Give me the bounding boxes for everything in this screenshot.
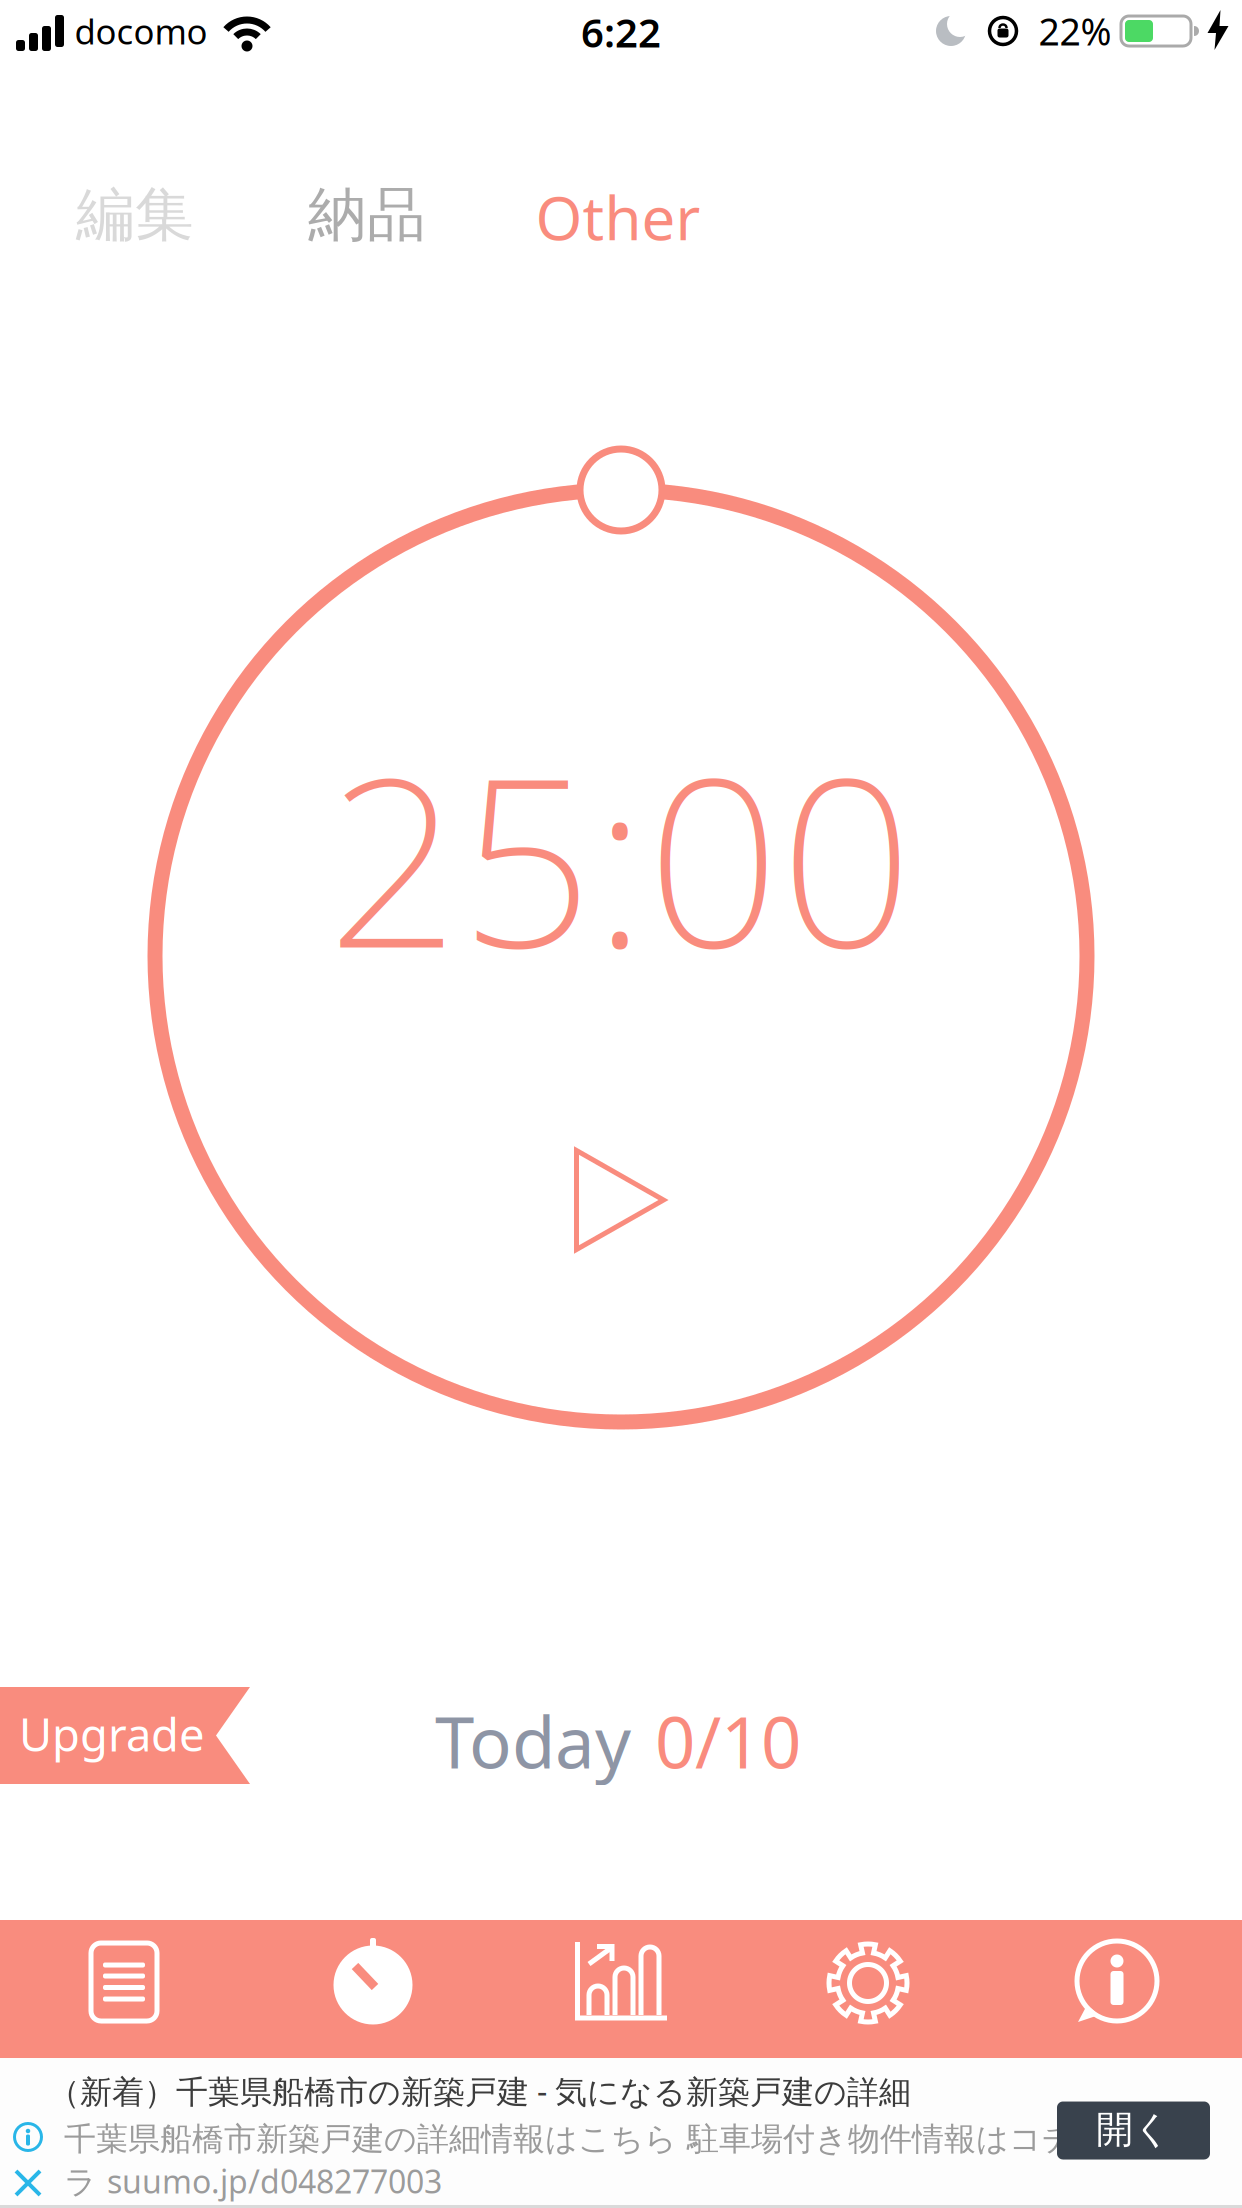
button[interactable]: Tasks (91, 1943, 157, 2021)
staticText: 千葉県船橋市新築戸建の詳細情報はこちら 駐車場付き物件情報はコチ (64, 2119, 1075, 2159)
button[interactable]: Info (1073, 1939, 1161, 2027)
staticText: docomo (74, 8, 207, 54)
staticText: 0/10 (655, 1694, 801, 1788)
staticText: 開く (1096, 2107, 1171, 2152)
staticText: Upgrade (19, 1704, 205, 1764)
button[interactable]: 開く (1057, 2101, 1210, 2159)
staticText: Other (535, 177, 700, 257)
staticText: 22% (1038, 6, 1111, 56)
staticText: ラ suumo.jp/d048277003 (64, 2160, 442, 2202)
button[interactable]: Settings (826, 1941, 910, 2025)
button[interactable]: Upgrade (0, 1687, 250, 1784)
button[interactable]: 納品 (308, 179, 426, 251)
button[interactable]: Ad information (14, 2123, 42, 2151)
button[interactable]: Close ad (14, 2169, 42, 2197)
button[interactable]: Start (573, 1147, 666, 1252)
staticText: 25:00 (327, 702, 913, 1012)
staticText: 納品 (308, 179, 426, 251)
button[interactable]: Other (535, 177, 700, 257)
button[interactable]: Timer (331, 1938, 415, 2024)
staticText: 編集 (76, 179, 194, 251)
button[interactable]: 編集 (76, 179, 194, 251)
button[interactable]: Statistics (574, 1941, 668, 2021)
staticText: 6:22 (581, 5, 661, 58)
staticText: （新着）千葉県船橋市の新築戸建 - 気になる新築戸建の詳細 (48, 2070, 911, 2112)
staticText: Today (435, 1694, 631, 1788)
